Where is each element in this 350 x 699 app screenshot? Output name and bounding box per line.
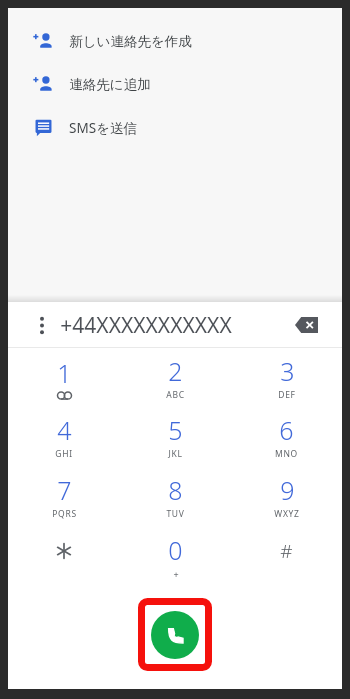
button[interactable]: 2 (120, 348, 231, 407)
button[interactable]: 8 (120, 466, 231, 526)
staticText: JKL (168, 448, 183, 460)
button[interactable]: 1 (8, 348, 120, 407)
button[interactable]: # (231, 526, 342, 586)
button[interactable]: More options (26, 309, 58, 341)
staticText: 1 (57, 356, 72, 390)
button[interactable]: 連絡先に追加 (8, 63, 342, 106)
staticText: ABC (166, 389, 185, 401)
button[interactable]: 新しい連絡先を作成 (8, 20, 342, 63)
button[interactable] (8, 526, 120, 586)
staticText: 6 (279, 413, 294, 447)
staticText: 9 (280, 473, 295, 507)
staticText: + (173, 568, 179, 580)
button[interactable]: 6 (231, 407, 342, 466)
button[interactable]: 7 (8, 466, 120, 526)
staticText: MNO (275, 448, 298, 460)
button[interactable]: 9 (231, 466, 342, 526)
staticText: 新しい連絡先を作成 (69, 33, 192, 50)
staticText: DEF (278, 389, 296, 401)
staticText: PQRS (52, 508, 77, 520)
staticText: 4 (57, 413, 72, 447)
button[interactable]: 5 (120, 407, 231, 466)
staticText: TUV (166, 508, 185, 520)
staticText: 2 (168, 354, 183, 388)
staticText: 連絡先に追加 (69, 76, 151, 93)
staticText: 5 (168, 413, 183, 447)
staticText: SMSを送信 (69, 119, 137, 137)
staticText: WXYZ (274, 508, 300, 520)
staticText: GHI (55, 448, 73, 460)
button[interactable]: 0 (120, 526, 231, 586)
staticText: 7 (57, 473, 72, 507)
staticText: 8 (168, 473, 183, 507)
staticText: # (280, 538, 293, 564)
button[interactable]: Backspace (289, 308, 323, 342)
button[interactable]: 3 (231, 348, 342, 407)
staticText: 0 (168, 533, 183, 567)
staticText: 3 (280, 354, 295, 388)
button[interactable]: SMSを送信 (8, 106, 342, 149)
staticText: +44XXXXXXXXXXX (60, 311, 232, 340)
button[interactable]: Call (151, 611, 199, 659)
button[interactable]: 4 (8, 407, 120, 466)
